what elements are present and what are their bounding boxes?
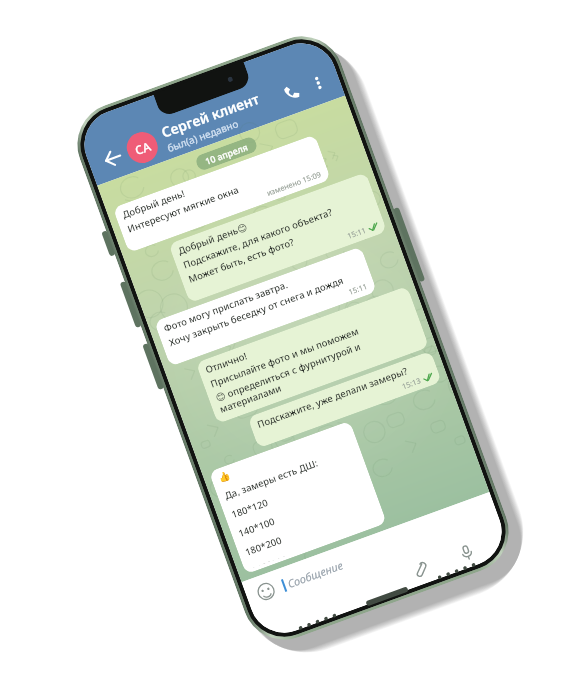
button[interactable]: Attach <box>404 554 435 585</box>
button[interactable]: 10 апреля <box>194 135 259 172</box>
staticText: 140*100 <box>236 515 277 540</box>
staticText: 15:11 <box>347 281 369 297</box>
staticText: 15:11 <box>346 225 368 241</box>
button[interactable]: Call <box>273 73 311 112</box>
staticText: 180*120 <box>230 496 270 521</box>
staticText: Фото могу прислать завтра. <box>162 278 289 335</box>
staticText: Отлично! <box>204 349 249 376</box>
button[interactable]: Фото могу прислать завтра. <box>154 246 377 367</box>
button[interactable]: Сообщение <box>281 504 490 593</box>
staticText: Интересуют мягкие окна <box>126 183 241 236</box>
button[interactable]: Back <box>92 139 131 177</box>
staticText: Добрый день! <box>121 187 187 221</box>
staticText: 180*200 <box>243 534 283 559</box>
staticText: Хочу закрыть беседку от снега и дождя <box>167 274 345 349</box>
staticText: 140*200 <box>250 552 287 568</box>
staticText: был(а) недавно <box>165 116 240 155</box>
button[interactable]: Добрый день! <box>113 134 331 253</box>
staticText: 😊 определиться с фурнитурой и материалам… <box>214 320 421 416</box>
staticText: Сообщение <box>285 557 345 591</box>
staticText: 👍 <box>217 469 232 484</box>
button[interactable]: Voice message <box>451 537 482 568</box>
button[interactable]: Emoji <box>252 577 280 606</box>
staticText: Присылайте фото и мы поможем <box>209 325 361 390</box>
staticText: Подскажите, уже делали замеры? <box>255 364 410 431</box>
staticText: 15:13 <box>400 375 423 391</box>
staticText: Добрый день😊 <box>176 220 249 258</box>
staticText: изменено 15:09 <box>265 169 323 198</box>
staticText: Да, замеры есть ДШ: <box>223 456 320 502</box>
button[interactable]: CA <box>122 128 162 167</box>
button[interactable]: Сергей клиент <box>159 83 284 155</box>
button[interactable]: Добрый день😊 <box>168 172 387 303</box>
staticText: CA <box>133 138 153 158</box>
staticText: Сергей клиент <box>159 89 262 142</box>
button[interactable]: Отлично! <box>196 286 429 424</box>
button[interactable]: More options <box>302 66 335 100</box>
staticText: Подскажите, для какого объекта? <box>181 205 334 272</box>
button[interactable]: Подскажите, уже делали замеры? <box>247 351 442 448</box>
staticText: 10 апреля <box>203 140 250 167</box>
staticText: Может быть, есть фото? <box>186 235 296 286</box>
button[interactable]: 👍 <box>209 421 387 574</box>
